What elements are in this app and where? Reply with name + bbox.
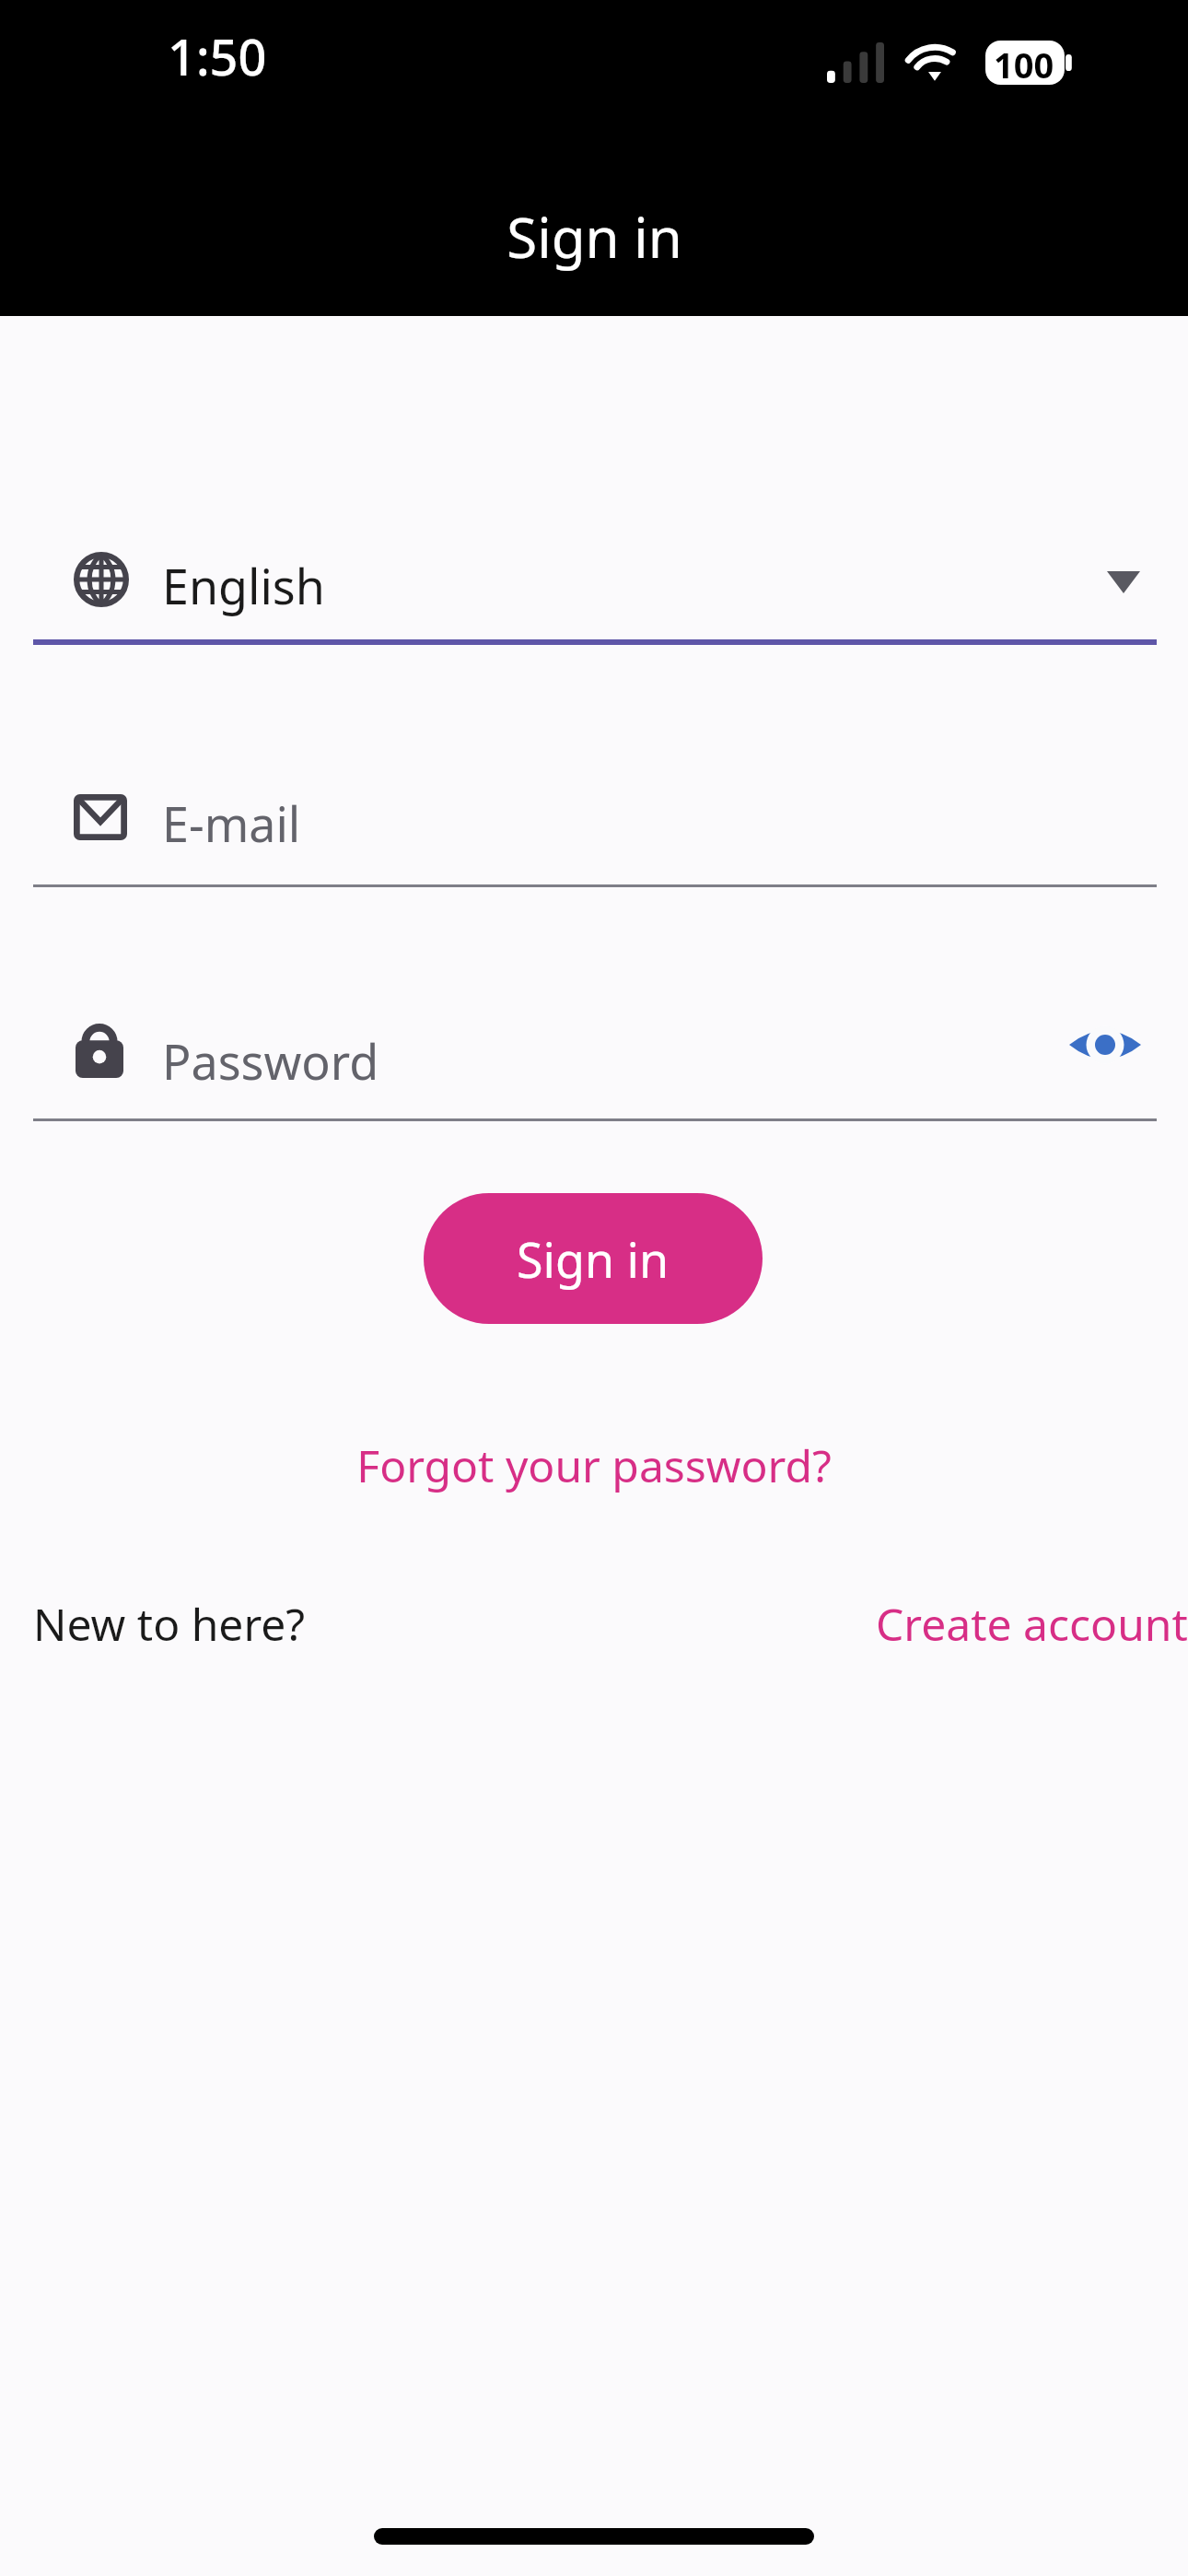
staticText: 100 <box>994 41 1054 85</box>
button[interactable]: Forgot your password? <box>0 1419 1188 1511</box>
staticText: Create account <box>876 1594 1188 1654</box>
staticText: 1:50 <box>168 22 267 90</box>
staticText: Password <box>162 1028 379 1094</box>
staticText: E-mail <box>162 790 301 856</box>
staticText: Sign in <box>517 1226 670 1292</box>
staticText: English <box>162 553 325 618</box>
button[interactable]: English <box>0 525 1188 639</box>
staticText: Sign in <box>507 199 682 275</box>
button[interactable]: Show password <box>1057 997 1153 1093</box>
button[interactable]: E-mail <box>0 765 1188 883</box>
button[interactable]: Sign in <box>424 1193 763 1324</box>
button[interactable]: Create account <box>876 1594 1188 1654</box>
staticText: New to here? <box>33 1594 306 1654</box>
staticText: Forgot your password? <box>356 1435 832 1495</box>
button[interactable]: Password <box>0 1002 1188 1120</box>
